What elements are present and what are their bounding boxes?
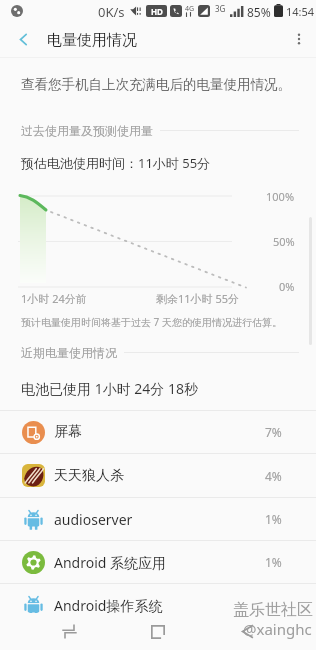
staticText: 1% bbox=[265, 554, 282, 570]
staticText: 盖乐世社区 bbox=[233, 600, 313, 620]
button[interactable]: More options bbox=[282, 22, 316, 56]
button[interactable]: Recent apps bbox=[47, 613, 91, 650]
staticText: 屏幕 bbox=[54, 423, 82, 441]
button[interactable]: Home bbox=[136, 613, 180, 650]
staticText: audioserver bbox=[54, 510, 133, 529]
staticText: 剩余11小时 55分 bbox=[156, 291, 240, 306]
staticText: 7% bbox=[265, 424, 282, 440]
staticText: 预计电量使用时间将基于过去 7 天您的使用情况进行估算。 bbox=[21, 315, 282, 329]
staticText: 50% bbox=[273, 234, 295, 249]
staticText: @xainghc bbox=[243, 619, 312, 639]
staticText: Android操作系统 bbox=[54, 596, 163, 615]
staticText: 近期电量使用情况 bbox=[21, 345, 117, 360]
button[interactable]: Back bbox=[225, 613, 269, 650]
staticText: 电量使用情况 bbox=[47, 31, 137, 50]
staticText: 过去使用量及预测使用量 bbox=[21, 123, 153, 138]
button[interactable]: 屏幕 bbox=[0, 411, 316, 453]
staticText: 4% bbox=[265, 468, 282, 484]
staticText: Android 系统应用 bbox=[54, 553, 167, 572]
staticText: 0% bbox=[279, 279, 295, 294]
staticText: 查看您手机自上次充满电后的电量使用情况。 bbox=[21, 76, 291, 93]
button[interactable]: Navigate up bbox=[6, 22, 40, 56]
button[interactable]: audioserver bbox=[0, 498, 316, 540]
staticText: 电池已使用 1小时 24分 18秒 bbox=[21, 379, 198, 398]
staticText: HD bbox=[151, 6, 163, 17]
staticText: 0K/s bbox=[98, 3, 125, 21]
staticText: 100% bbox=[266, 189, 295, 204]
staticText: 天天狼人杀 bbox=[54, 467, 124, 485]
button[interactable]: 天天狼人杀 bbox=[0, 454, 316, 497]
staticText: 1% bbox=[265, 511, 282, 527]
staticText: 14:54 bbox=[286, 4, 315, 19]
staticText: 1小时 24分前 bbox=[21, 291, 87, 306]
staticText: 4G bbox=[185, 4, 195, 14]
staticText: 85% bbox=[247, 4, 271, 20]
button[interactable]: Android操作系统 bbox=[0, 584, 316, 627]
staticText: 3G bbox=[215, 3, 226, 14]
staticText: 预估电池使用时间：11小时 55分 bbox=[21, 154, 211, 172]
button[interactable]: Android 系统应用 bbox=[0, 541, 316, 583]
